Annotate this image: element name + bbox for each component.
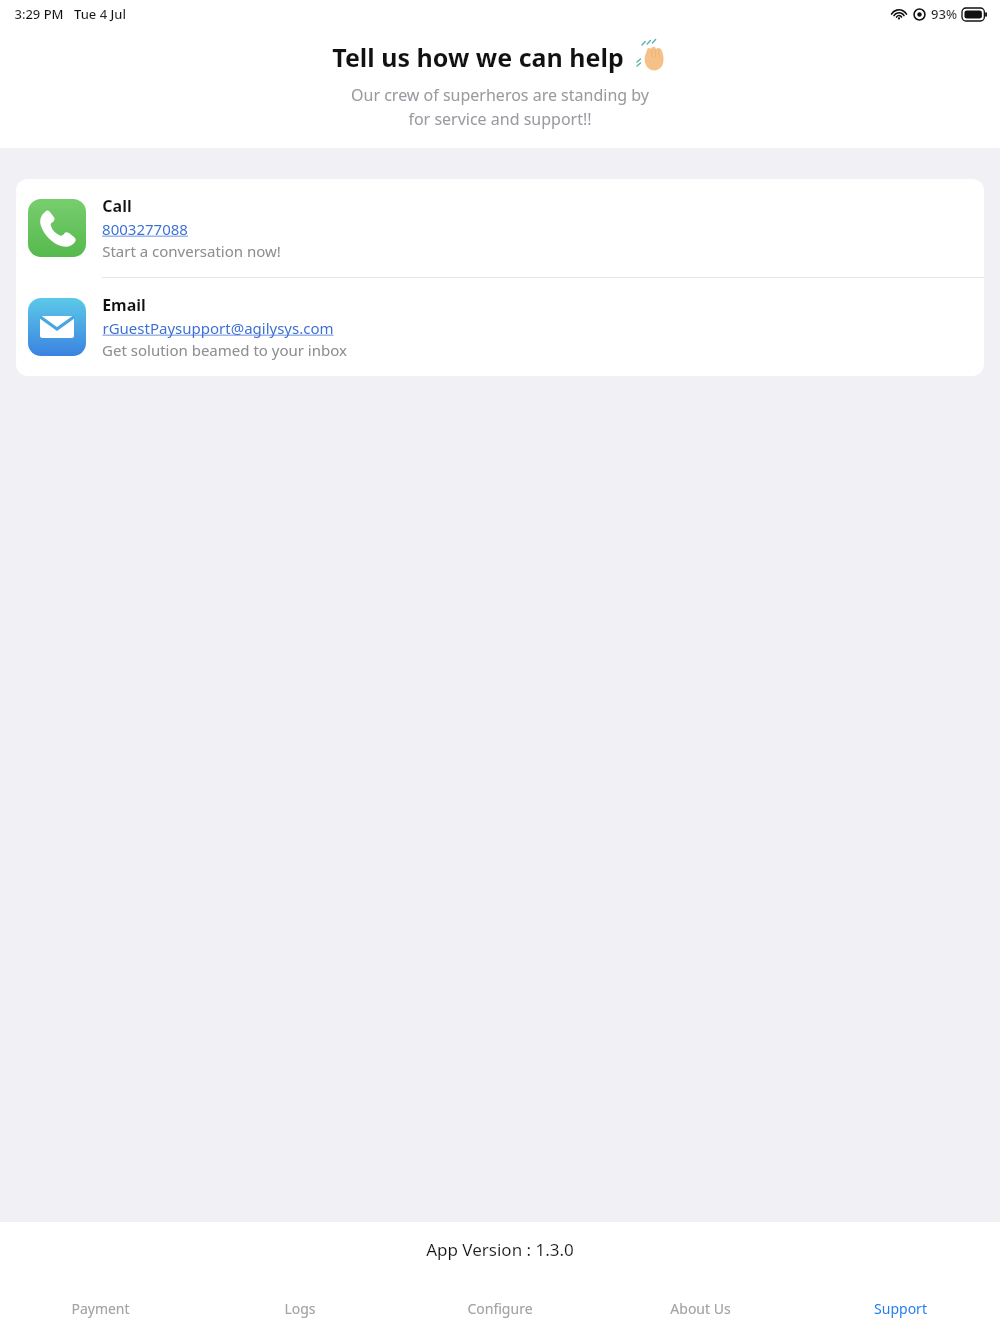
staticText: for service and support!! — [408, 108, 592, 130]
staticText: Start a conversation now! — [102, 241, 281, 261]
button[interactable]: Payment — [0, 1283, 200, 1334]
button[interactable]: Support — [800, 1283, 1000, 1334]
button[interactable]: Configure — [400, 1283, 600, 1334]
staticText: Support — [874, 1299, 927, 1318]
staticText: About Us — [670, 1299, 731, 1318]
staticText: Email — [102, 294, 146, 316]
button[interactable]: Logs — [200, 1283, 400, 1334]
button[interactable]: Call — [16, 179, 984, 277]
staticText: Payment — [71, 1299, 130, 1318]
staticText: App Version : 1.3.0 — [426, 1238, 574, 1261]
staticText: rGuestPaysupport@agilysys.com — [102, 318, 334, 338]
staticText: Tell us how we can help — [332, 40, 624, 74]
button[interactable]: Call — [28, 199, 86, 257]
button[interactable]: Email — [16, 278, 984, 376]
button[interactable]: About Us — [600, 1283, 800, 1334]
staticText: Tue 4 Jul — [74, 5, 126, 23]
staticText: Logs — [284, 1299, 316, 1318]
staticText: 8003277088 — [102, 219, 188, 239]
staticText: Our crew of superheros are standing by — [351, 84, 649, 106]
button[interactable]: Email — [28, 298, 86, 356]
staticText: Get solution beamed to your inbox — [102, 340, 347, 360]
staticText: Call — [102, 195, 132, 217]
staticText: Configure — [467, 1299, 533, 1318]
staticText: 3:29 PM — [14, 5, 64, 23]
staticText: 93% — [931, 5, 957, 23]
